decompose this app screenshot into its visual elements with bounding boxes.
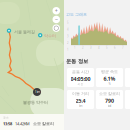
staticText: 이동 거리: [72, 91, 89, 96]
staticText: 평균 속도: [101, 69, 118, 74]
staticText: 1: [74, 46, 76, 49]
button[interactable]: 이동 거리: [67, 90, 94, 109]
staticText: 790: [105, 97, 114, 104]
staticText: 운동 시간: [72, 69, 89, 74]
staticText: 6: [114, 46, 116, 49]
button[interactable]: Current location: [52, 24, 60, 32]
staticText: 서울 둘레길: [14, 29, 35, 34]
staticText: 시간: [77, 82, 83, 86]
staticText: 14.42KM: [15, 121, 30, 126]
staticText: −: [55, 16, 58, 23]
staticText: 3: [90, 46, 92, 49]
staticText: 코스: [3, 116, 9, 119]
staticText: +: [55, 7, 58, 14]
staticText: 약수터: [44, 33, 56, 38]
staticText: km: [79, 104, 82, 108]
staticText: 소모 칼로리: [99, 91, 120, 96]
staticText: 운동 정보: [66, 58, 88, 65]
staticText: kcal: [107, 104, 111, 108]
staticText: 04:05:00: [70, 75, 90, 82]
staticText: 1km: [34, 90, 39, 94]
staticText: 소모 칼로리: [33, 121, 54, 126]
staticText: 6.1%: [103, 75, 115, 82]
staticText: 불광동 약수터: [23, 100, 48, 105]
button[interactable]: 소모 칼로리: [96, 90, 123, 109]
staticText: 7: [122, 46, 124, 49]
staticText: 2: [82, 46, 84, 49]
staticText: 3: [67, 34, 69, 38]
button[interactable]: Zoom in: [52, 7, 60, 14]
staticText: 고도 그래프: [66, 12, 87, 17]
staticText: 2: [67, 41, 69, 45]
button[interactable]: 평균 속도: [96, 68, 123, 87]
staticText: 25.4: [75, 97, 85, 104]
staticText: 5: [106, 46, 108, 49]
staticText: 5: [67, 21, 69, 24]
button[interactable]: Zoom out: [52, 16, 60, 23]
staticText: 4: [98, 46, 100, 49]
staticText: 4: [67, 28, 69, 31]
staticText: 13:58: [3, 121, 12, 126]
staticText: %: [108, 82, 110, 86]
button[interactable]: 운동 시간: [67, 68, 94, 87]
staticText: 1: [67, 48, 69, 51]
